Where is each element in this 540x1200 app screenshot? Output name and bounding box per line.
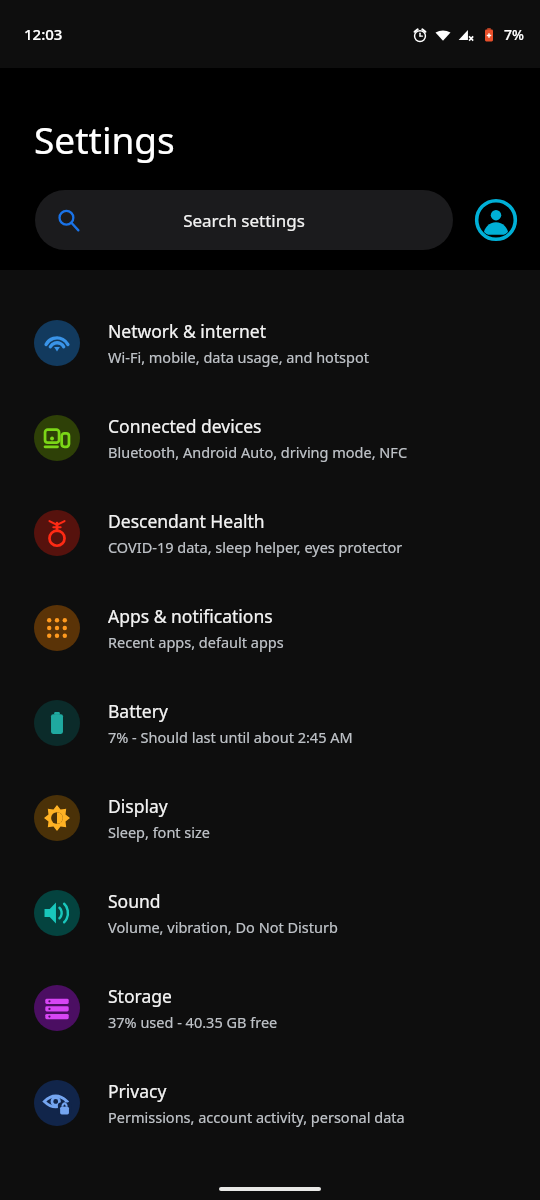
button[interactable]: Network & internet (0, 295, 540, 390)
staticText: Apps & notifications (108, 604, 273, 628)
staticText: Settings (34, 114, 175, 164)
button[interactable]: Sound (0, 865, 540, 960)
staticText: Network & internet (108, 319, 267, 343)
staticText: COVID-19 data, sleep helper, eyes protec… (108, 537, 403, 557)
staticText: Recent apps, default apps (108, 632, 284, 652)
button[interactable]: Descendant Health (0, 485, 540, 580)
button[interactable]: Privacy (0, 1055, 540, 1150)
button[interactable]: Apps & notifications (0, 580, 540, 675)
staticText: Battery (108, 699, 168, 723)
staticText: Search settings (80, 209, 408, 232)
staticText: Connected devices (108, 414, 262, 438)
button[interactable]: Connected devices (0, 390, 540, 485)
button[interactable]: Storage (0, 960, 540, 1055)
staticText: Display (108, 794, 168, 818)
button[interactable]: Display (0, 770, 540, 865)
staticText: Wi-Fi, mobile, data usage, and hotspot (108, 347, 369, 367)
staticText: 7% (504, 25, 524, 44)
staticText: 7% - Should last until about 2:45 AM (108, 727, 353, 747)
button[interactable]: Account (472, 196, 520, 244)
staticText: Permissions, account activity, personal … (108, 1107, 405, 1127)
staticText: Descendant Health (108, 509, 265, 533)
staticText: 12:03 (24, 24, 63, 44)
staticText: 37% used - 40.35 GB free (108, 1012, 278, 1032)
staticText: Volume, vibration, Do Not Disturb (108, 917, 338, 937)
staticText: Sleep, font size (108, 822, 211, 842)
staticText: Privacy (108, 1079, 167, 1103)
button[interactable]: Search settings (35, 190, 453, 250)
button[interactable]: Battery (0, 675, 540, 770)
staticText: Storage (108, 984, 172, 1008)
staticText: Bluetooth, Android Auto, driving mode, N… (108, 442, 408, 462)
staticText: Sound (108, 889, 161, 913)
